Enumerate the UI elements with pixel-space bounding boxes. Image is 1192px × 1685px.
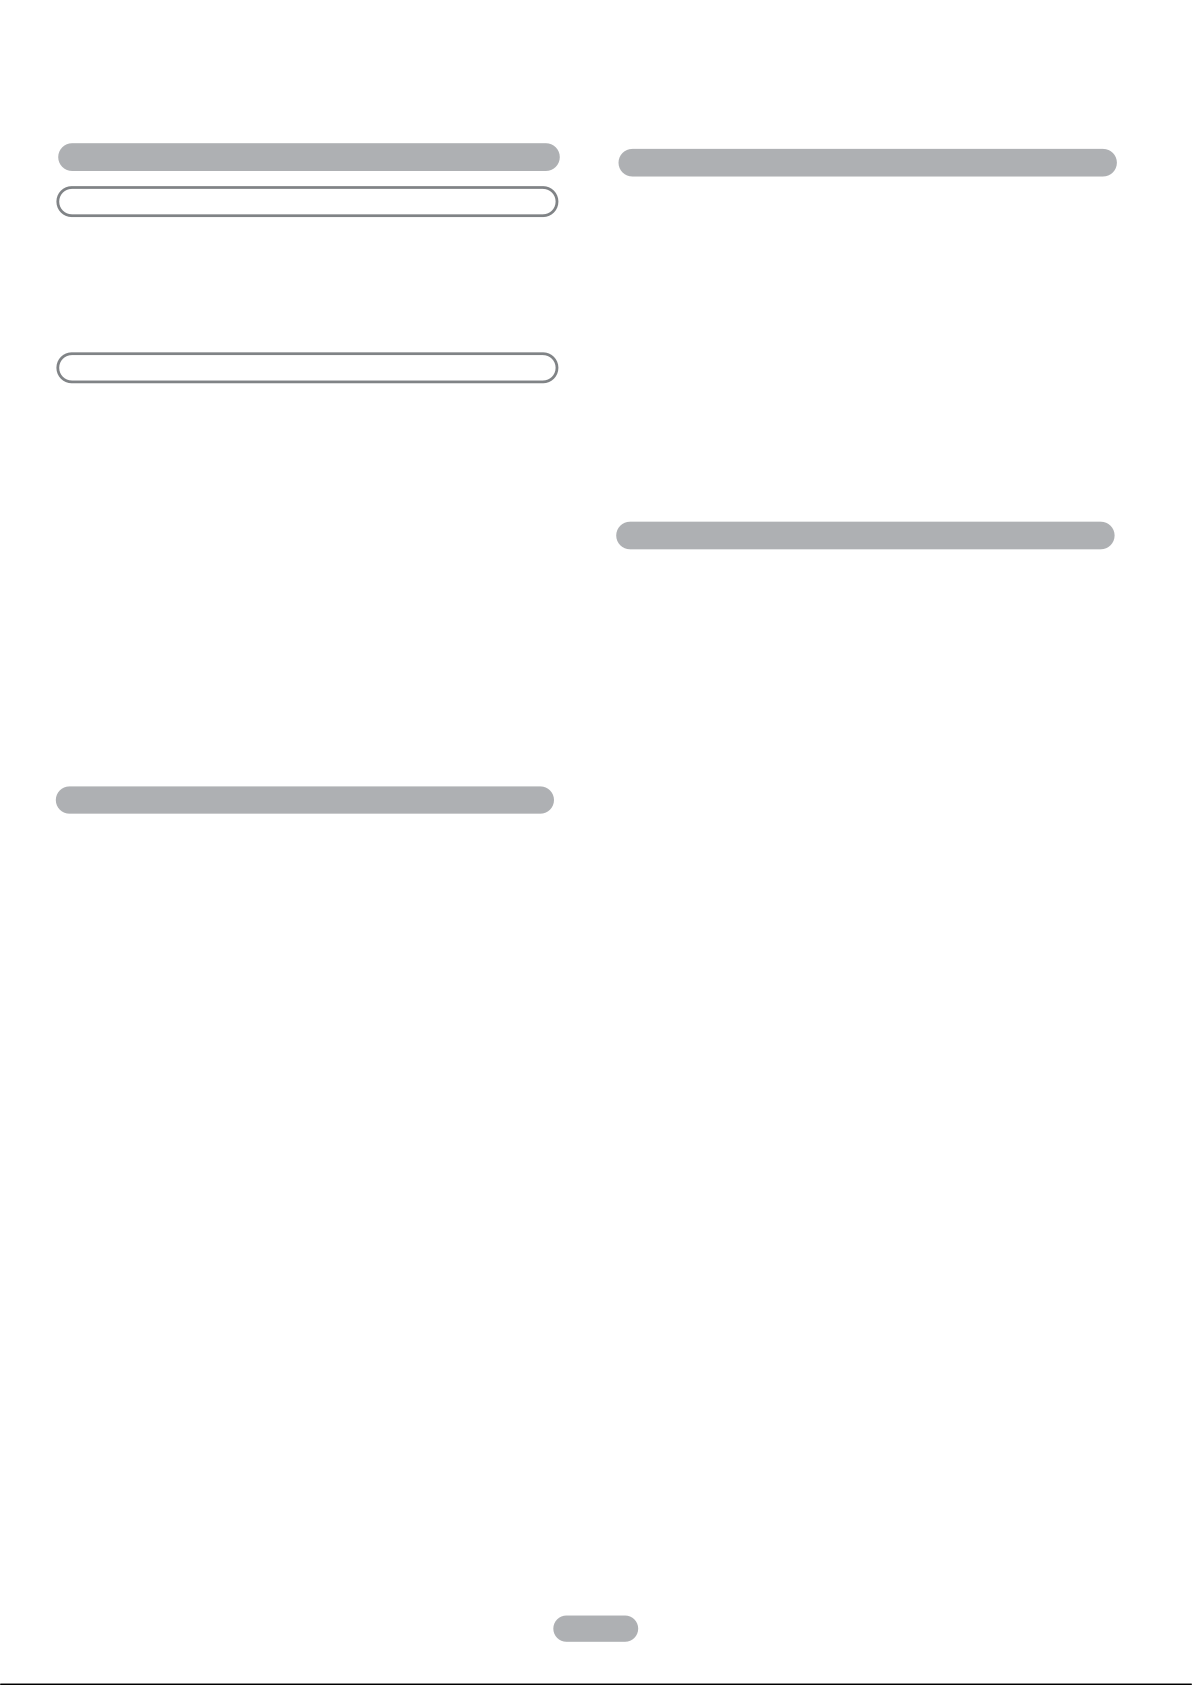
button[interactable]: Text field xyxy=(56,352,558,383)
button[interactable]: Loading action xyxy=(553,1615,638,1642)
button[interactable]: Text field xyxy=(56,186,558,217)
